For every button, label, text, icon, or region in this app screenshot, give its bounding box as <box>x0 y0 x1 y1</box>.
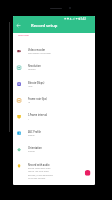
staticText: 1 <box>28 117 29 120</box>
button[interactable]: Bitrate (Kbps) <box>13 77 95 93</box>
staticText: Record screen with audio source. You mus… <box>28 167 54 180</box>
button[interactable]: Record with audio <box>13 159 95 181</box>
button[interactable]: Back <box>14 21 22 29</box>
staticText: AVC Profile <box>28 130 41 133</box>
staticText: Portrait <box>28 150 35 153</box>
staticText: Orientation <box>28 146 42 150</box>
staticText: Frame rate (fps) <box>28 97 47 101</box>
staticText: 15 <box>28 101 30 104</box>
staticText: Default <box>28 134 35 136</box>
staticText: OMX.Exynos.AVC.Encoder <box>28 52 51 54</box>
button[interactable]: Video encoder <box>13 44 95 60</box>
staticText: Record setup <box>31 22 57 28</box>
staticText: 480x360 <box>28 68 36 71</box>
button[interactable]: Start recording <box>85 170 91 176</box>
button[interactable]: Resolution <box>13 60 95 77</box>
staticText: Bitrate (Kbps) <box>28 81 44 84</box>
button[interactable]: Orientation <box>13 142 95 159</box>
staticText: Video encoder <box>28 48 45 51</box>
staticText: 1200 <box>28 85 32 87</box>
staticText: 3:43 <box>80 17 86 20</box>
staticText: Resolution <box>28 64 41 68</box>
staticText: Video config <box>18 34 29 37</box>
button[interactable]: I-Frame interval <box>13 109 95 126</box>
button[interactable]: Frame rate (fps) <box>13 93 95 109</box>
staticText: I-Frame interval <box>28 114 47 117</box>
staticText: Record with audio <box>28 163 50 166</box>
button[interactable]: AVC Profile <box>13 126 95 142</box>
